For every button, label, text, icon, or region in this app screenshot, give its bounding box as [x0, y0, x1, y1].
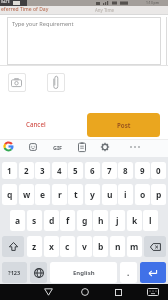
staticText: Post [117, 121, 131, 129]
button[interactable]: 8 [118, 162, 133, 179]
button[interactable]: o [135, 184, 150, 205]
button[interactable]: 2 [19, 162, 34, 179]
button[interactable]: 3 [35, 162, 50, 179]
button[interactable]: s [27, 210, 42, 231]
staticText: ?123 [8, 269, 21, 277]
button[interactable]: a [10, 210, 25, 231]
button[interactable]: f [60, 210, 75, 231]
button[interactable] [141, 284, 165, 300]
button[interactable]: b [93, 236, 108, 257]
staticText: m [130, 241, 139, 253]
button[interactable]: q [2, 184, 17, 205]
button[interactable]: Cancel [20, 117, 51, 130]
button[interactable] [8, 73, 26, 92]
button[interactable]: c [60, 236, 75, 257]
staticText: 6 [90, 165, 95, 176]
staticText: u [107, 189, 113, 201]
button[interactable] [140, 262, 166, 283]
button[interactable]: h [93, 210, 108, 231]
staticText: 3 [40, 165, 45, 176]
button[interactable] [2, 236, 24, 257]
staticText: b [98, 241, 104, 253]
button[interactable]: l [143, 210, 158, 231]
staticText: 0 [156, 165, 161, 176]
button[interactable]: e [35, 184, 50, 205]
staticText: o [140, 189, 146, 201]
staticText: v [82, 241, 87, 253]
button[interactable]: k [127, 210, 142, 231]
staticText: 1:13 pm [146, 0, 159, 5]
button[interactable]: Post [87, 113, 160, 137]
staticText: 8 [123, 165, 128, 176]
staticText: Type your Requirement [12, 20, 74, 28]
button[interactable]: n [110, 236, 125, 257]
staticText: r [58, 189, 62, 201]
staticText: e [40, 189, 46, 201]
staticText: q [7, 189, 13, 201]
button[interactable]: g [77, 210, 92, 231]
button[interactable]: GIF [50, 141, 66, 153]
button[interactable]: r [52, 184, 67, 205]
button[interactable] [77, 142, 87, 152]
button[interactable]: d [44, 210, 59, 231]
button[interactable] [100, 142, 110, 152]
button[interactable]: v [77, 236, 92, 257]
staticText: n [115, 241, 121, 253]
button[interactable] [30, 262, 47, 283]
button[interactable]: 0 [151, 162, 166, 179]
staticText: p [156, 189, 162, 201]
staticText: z [32, 241, 37, 253]
button[interactable] [47, 73, 65, 92]
button[interactable] [36, 284, 60, 300]
button[interactable] [144, 236, 166, 257]
button[interactable]: 1 [2, 162, 17, 179]
button[interactable]: 5 [68, 162, 83, 179]
staticText: i [124, 189, 127, 201]
staticText: d [49, 215, 55, 227]
staticText: 2 [24, 165, 29, 176]
staticText: eferred Time of Day [1, 6, 49, 13]
button[interactable]: 7 [102, 162, 117, 179]
button[interactable]: 6 [85, 162, 100, 179]
button[interactable]: p [151, 184, 166, 205]
button[interactable]: z [27, 236, 42, 257]
button[interactable]: t [68, 184, 83, 205]
button[interactable]: u [102, 184, 117, 205]
staticText: English [73, 269, 95, 277]
button[interactable]: . [120, 262, 137, 283]
button[interactable]: i [118, 184, 133, 205]
staticText: 5 [73, 165, 78, 176]
button[interactable] [73, 284, 97, 300]
button[interactable] [29, 143, 37, 151]
staticText: x [49, 241, 54, 253]
button[interactable] [3, 141, 14, 152]
staticText: h [98, 215, 104, 227]
button[interactable]: y [85, 184, 100, 205]
button[interactable] [106, 284, 130, 300]
staticText: Any Time [95, 7, 115, 13]
button[interactable]: m [127, 236, 142, 257]
button[interactable]: w [19, 184, 34, 205]
button[interactable]: English [50, 262, 117, 283]
staticText: y [90, 189, 95, 201]
button[interactable] [128, 142, 142, 152]
staticText: g [82, 215, 88, 227]
button[interactable]: j [110, 210, 125, 231]
staticText: s [32, 215, 37, 227]
staticText: Cancel [26, 120, 46, 128]
staticText: a [15, 215, 21, 227]
staticText: w [23, 189, 31, 201]
staticText: 1 [7, 165, 12, 176]
button[interactable]: Type your Requirement [7, 17, 161, 65]
staticText: l [149, 215, 152, 227]
button[interactable]: 9 [135, 162, 150, 179]
staticText: 9 [140, 165, 145, 176]
staticText: f [66, 215, 70, 227]
button[interactable]: 4 [52, 162, 67, 179]
button[interactable]: x [44, 236, 59, 257]
staticText: c [65, 241, 70, 253]
staticText: GIF [53, 144, 63, 151]
staticText: 7 [107, 165, 112, 176]
button[interactable]: ?123 [2, 262, 27, 283]
staticText: t [74, 189, 78, 201]
